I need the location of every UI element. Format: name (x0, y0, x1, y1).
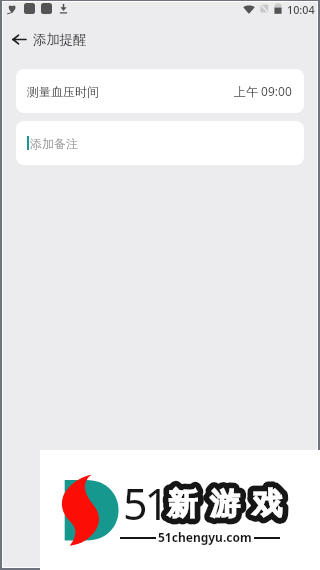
button[interactable]: 添加备注 (16, 121, 304, 165)
staticText: 51 (123, 474, 167, 533)
staticText: 添加提醒 (33, 31, 87, 48)
staticText: 新游戏 (167, 485, 295, 523)
staticText: 测量血压时间 (27, 84, 99, 99)
staticText: 新游戏 (167, 485, 295, 523)
button[interactable]: Back (8, 28, 30, 50)
staticText: 51chengyu.com (158, 529, 252, 545)
staticText: 10:04 (287, 2, 315, 15)
staticText: 上午 09:00 (234, 83, 292, 99)
button[interactable]: 测量血压时间 (16, 69, 304, 113)
staticText: 添加备注 (30, 136, 78, 151)
